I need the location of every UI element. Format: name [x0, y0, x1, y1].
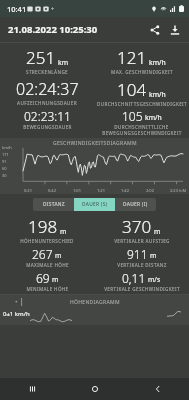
staticText: km/h [145, 113, 162, 122]
staticText: 171 [2, 152, 9, 157]
staticText: km/h [2, 145, 12, 150]
staticText: 1:21 [97, 188, 105, 193]
staticText: MINIMALE HÖHE [26, 286, 69, 292]
staticText: km [58, 58, 68, 67]
staticText: m [52, 275, 59, 284]
staticText: DAUER (I) [123, 201, 148, 208]
staticText: 02:23:11 [24, 108, 71, 124]
button[interactable]: HÖHENDIAGRAMM [0, 295, 189, 325]
staticText: 10:41 [7, 4, 27, 14]
button[interactable]: Back [126, 378, 189, 400]
staticText: HÖHENDIAGRAMM [70, 299, 120, 306]
staticText: DURCHSCHNITTSGESCHWINDIGKEIT [97, 101, 187, 107]
staticText: m [60, 227, 67, 236]
staticText: 370 [122, 215, 152, 238]
staticText: VERTIKALE GESCHWINDIGKEIT [104, 286, 180, 292]
staticText: 121 [117, 46, 147, 69]
staticText: DAUER (S) [82, 201, 108, 208]
staticText: 21.08.2022 10:25:30 [8, 23, 98, 36]
staticText: 0±1 km/h [3, 310, 30, 318]
button[interactable]: Recent apps [0, 378, 63, 400]
staticText: VERTIKALER AUFSTIEG [114, 238, 170, 244]
button[interactable]: Share [145, 20, 165, 40]
staticText: 02:24:37 [16, 78, 79, 100]
staticText: AUFZEICHNUNGSDAUER [17, 100, 77, 106]
staticText: 105 [122, 108, 143, 124]
button[interactable]: DISTANZ [33, 198, 74, 211]
staticText: STRECKENLÄNGE [26, 69, 68, 75]
staticText: MAX. GESCHWINDIGKEIT [111, 69, 173, 75]
button[interactable]: Download [165, 20, 185, 40]
button[interactable]: Home [63, 378, 126, 400]
staticText: m/s [148, 275, 161, 284]
staticText: 60 [2, 166, 7, 171]
staticText: GESCHWINDIGKEITSDIAGRAMM [53, 140, 137, 147]
staticText: 1:42 [121, 188, 129, 193]
staticText: 0:21 [24, 188, 32, 193]
staticText: DISTANZ [43, 201, 65, 208]
button[interactable]: DAUER (S) [74, 198, 115, 211]
staticText: 911 [127, 246, 148, 262]
staticText: 91 [2, 159, 7, 164]
staticText: 0:42 [48, 188, 56, 193]
staticText: 251 [26, 46, 56, 69]
staticText: km/h [149, 58, 166, 67]
staticText: 30 [2, 173, 7, 178]
staticText: m [55, 251, 62, 260]
staticText: 267 [32, 246, 53, 262]
staticText: 2:23 h:M [170, 188, 187, 193]
staticText: VERTIKALE DISTANZ [117, 262, 167, 268]
staticText: DURCHSCHNITTLICHE [114, 124, 169, 130]
staticText: BEWEGUNGSDAUER [23, 124, 72, 130]
staticText: 104 [117, 78, 147, 101]
staticText: 0,11 [122, 270, 146, 286]
staticText: 69 [36, 270, 50, 286]
staticText: 1:01 [73, 188, 81, 193]
staticText: 198 [28, 215, 58, 238]
staticText: HÖHENUNTERSCHIED [20, 238, 74, 244]
staticText: + [51, 5, 55, 12]
button[interactable]: DAUER (I) [115, 198, 156, 211]
staticText: km/h [149, 90, 166, 99]
staticText: 2:02 [146, 188, 154, 193]
staticText: m [154, 227, 161, 236]
staticText: m [150, 251, 157, 260]
staticText: MAXIMALE HÖHE [26, 262, 69, 268]
staticText: BEWEGUNGSGESCHWINDIGKEIT [102, 130, 182, 136]
